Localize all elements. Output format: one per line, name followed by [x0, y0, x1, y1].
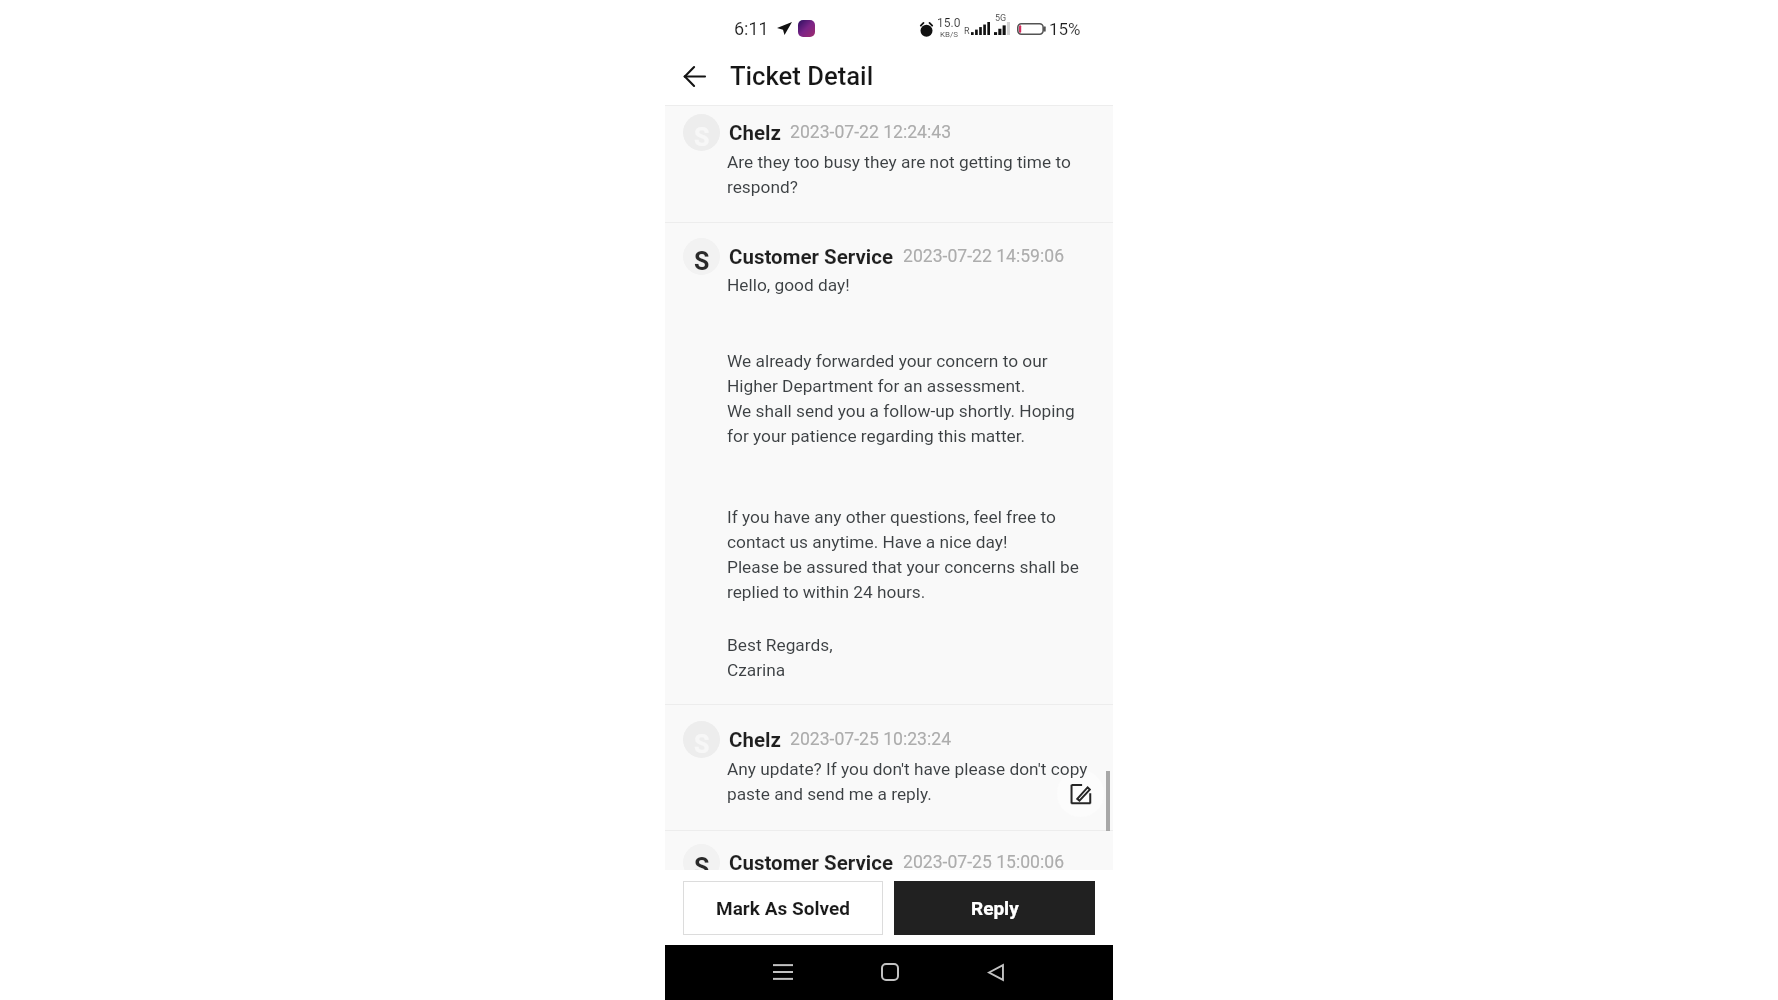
staticText: We already forwarded your concern to our…	[727, 347, 1075, 447]
staticText: Customer Service	[729, 851, 894, 875]
staticText: S	[694, 853, 710, 881]
staticText: Reply	[971, 897, 1019, 919]
staticText: S	[694, 123, 710, 151]
staticText: Chelz	[729, 121, 781, 145]
button[interactable]: Compose reply	[1057, 770, 1104, 817]
staticText: KB/S	[940, 30, 959, 39]
staticText: 15.0	[937, 16, 961, 30]
staticText: Are they too busy they are not getting t…	[727, 148, 1071, 198]
staticText: Hello, good day!	[727, 271, 850, 296]
staticText: Customer Service	[729, 245, 894, 269]
staticText: S	[694, 730, 710, 758]
staticText: 2023-07-22 12:24:43	[790, 122, 952, 143]
staticText: 2023-07-22 14:59:06	[903, 246, 1065, 267]
button[interactable]: Back	[674, 56, 714, 96]
button[interactable]: S	[665, 106, 1113, 223]
staticText: 2023-07-25 15:00:06	[903, 852, 1065, 873]
button[interactable]: S	[665, 223, 1113, 705]
button[interactable]: Back	[975, 951, 1017, 993]
button[interactable]: S	[665, 831, 1113, 870]
staticText: R	[964, 26, 970, 37]
staticText: 15%	[1049, 19, 1081, 39]
button[interactable]: Home	[869, 951, 911, 993]
button[interactable]: S	[665, 705, 1113, 831]
staticText: Ticket Detail	[730, 61, 874, 91]
button[interactable]: Mark As Solved	[683, 881, 883, 935]
staticText: Mark As Solved	[716, 897, 850, 919]
staticText: If you have any other questions, feel fr…	[727, 503, 1079, 603]
button[interactable]: Reply	[894, 881, 1095, 935]
staticText: 5G	[995, 13, 1007, 24]
staticText: 2023-07-25 10:23:24	[790, 729, 952, 750]
button[interactable]: Recent apps	[762, 951, 804, 993]
staticText: S	[694, 247, 710, 275]
staticText: 6:11	[734, 18, 769, 39]
staticText: Any update? If you don't have please don…	[727, 755, 1088, 805]
staticText: Chelz	[729, 728, 781, 752]
staticText: Best Regards, Czarina	[727, 631, 833, 681]
